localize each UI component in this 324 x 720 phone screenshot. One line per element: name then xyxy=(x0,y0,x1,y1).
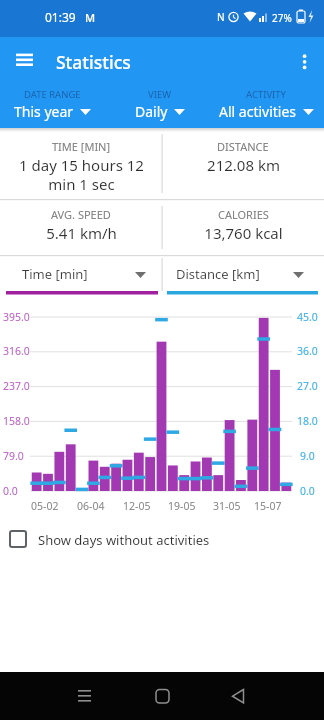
staticText: 158.0 xyxy=(3,414,30,428)
staticText: 12-05 xyxy=(123,499,151,513)
staticText: CALORIES xyxy=(218,207,269,222)
staticText: M xyxy=(85,10,96,25)
staticText: 36.0 xyxy=(297,344,318,358)
staticText: 79.0 xyxy=(3,449,24,463)
staticText: 27.0 xyxy=(297,379,318,393)
staticText: 0.0 xyxy=(3,484,18,498)
staticText: 1 day 15 hours 12 min 1 sec xyxy=(19,155,144,194)
button[interactable] xyxy=(214,678,262,714)
staticText: 27% xyxy=(272,11,292,25)
staticText: Time [min] xyxy=(22,265,88,283)
staticText: N xyxy=(217,10,225,24)
staticText: VIEW xyxy=(148,88,172,101)
staticText: 5.41 km/h xyxy=(46,223,117,243)
button[interactable]: Time [min] xyxy=(0,256,162,294)
staticText: ACTIVITY xyxy=(246,88,286,101)
staticText: 18.0 xyxy=(297,414,318,428)
staticText: 0.0 xyxy=(300,484,315,498)
staticText: 237.0 xyxy=(3,379,30,393)
button[interactable] xyxy=(8,48,44,84)
button[interactable]: VIEW xyxy=(104,88,216,128)
staticText: Statistics xyxy=(56,50,131,74)
button[interactable] xyxy=(296,48,320,72)
staticText: 45.0 xyxy=(297,310,318,324)
staticText: 13,760 kcal xyxy=(204,223,283,243)
button[interactable] xyxy=(60,678,108,714)
staticText: 9.0 xyxy=(300,449,315,463)
staticText: DISTANCE xyxy=(217,139,269,154)
staticText: 316.0 xyxy=(3,344,30,358)
staticText: 05-02 xyxy=(31,499,59,513)
staticText: 31-05 xyxy=(213,499,241,513)
button[interactable]: ACTIVITY xyxy=(208,88,324,128)
staticText: All activities xyxy=(219,102,297,121)
staticText: 06-04 xyxy=(77,499,105,513)
staticText: Daily xyxy=(135,102,168,121)
staticText: 19-05 xyxy=(168,499,196,513)
staticText: 15-07 xyxy=(254,499,282,513)
staticText: DATE RANGE xyxy=(24,88,81,101)
staticText: Distance [km] xyxy=(176,265,260,283)
button[interactable]: Distance [km] xyxy=(162,256,324,294)
staticText: 01:39 xyxy=(45,9,76,25)
staticText: 395.0 xyxy=(3,310,30,324)
button[interactable] xyxy=(138,678,186,714)
staticText: Show days without activities xyxy=(38,531,210,549)
button[interactable]: DATE RANGE xyxy=(0,88,104,128)
staticText: This year xyxy=(14,102,74,121)
staticText: TIME [MIN] xyxy=(52,139,111,154)
button[interactable]: Show days without activities xyxy=(0,524,324,554)
staticText: AVG. SPEED xyxy=(51,207,111,222)
staticText: 212.08 km xyxy=(207,155,280,175)
